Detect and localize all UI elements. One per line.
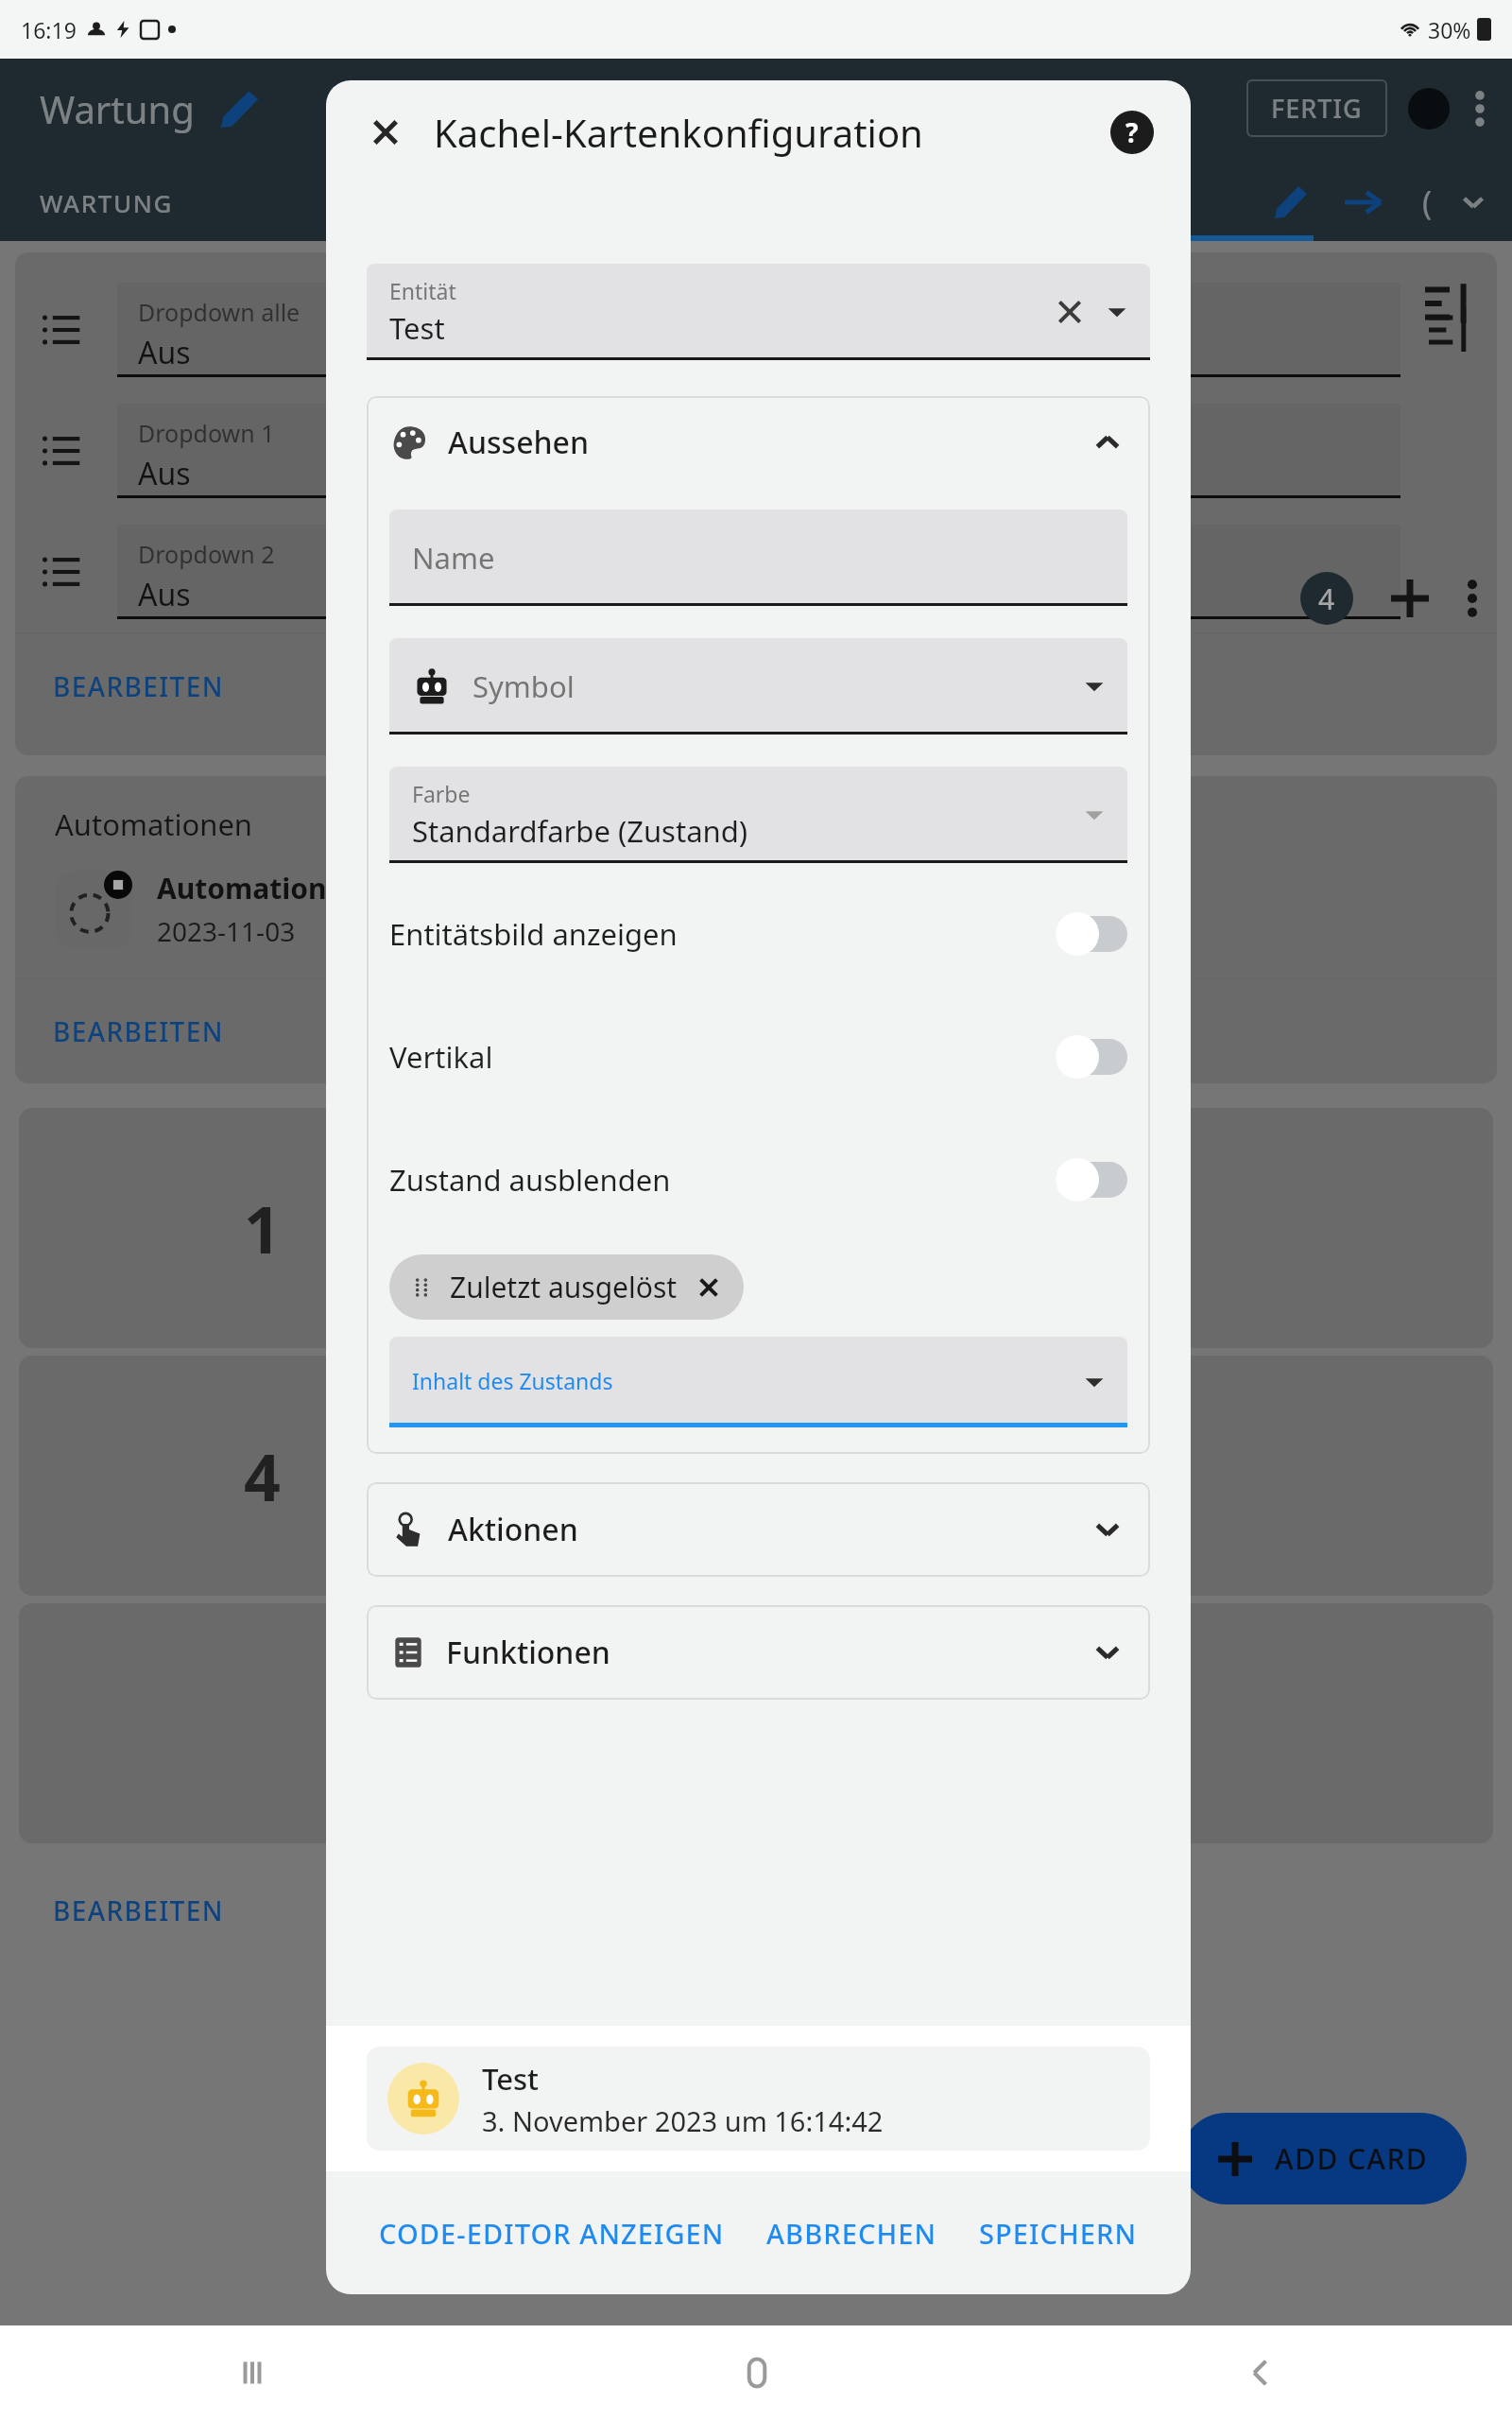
staticText: Test (482, 2059, 539, 2099)
other: Recent apps (236, 2357, 268, 2389)
staticText: Vertikal (389, 1037, 1056, 1077)
staticText: Aus (138, 332, 191, 373)
button[interactable]: Aussehen (367, 396, 1150, 489)
button[interactable]: CODE-EDITOR ANZEIGEN (366, 2202, 738, 2265)
staticText: 2023-11-03 (157, 913, 296, 949)
staticText: 4 (244, 1432, 281, 1520)
button[interactable]: Entitätsbild anzeigen (389, 873, 1127, 995)
button[interactable]: Funktionen (367, 1605, 1150, 1700)
staticText: ABBRECHEN (766, 2215, 937, 2252)
button[interactable]: Zuletzt ausgelöst (389, 1254, 744, 1320)
button[interactable]: Entität (367, 264, 1150, 360)
staticText: Zustand ausblenden (389, 1160, 1056, 1200)
staticText: Aktionen (448, 1509, 1090, 1550)
staticText: Zuletzt ausgelöst (450, 1268, 678, 1306)
staticText: 3. November 2023 um 16:14:42 (482, 2102, 884, 2139)
staticText: Aussehen (448, 422, 1090, 463)
staticText: ( (1422, 181, 1433, 224)
staticText: Automation (157, 869, 327, 907)
staticText: Dropdown 1 (138, 417, 275, 449)
staticText: CODE-EDITOR ANZEIGEN (379, 2215, 725, 2252)
button[interactable]: Symbol (389, 638, 1127, 735)
staticText: ? (1125, 114, 1139, 150)
button[interactable]: Schließen (360, 107, 411, 158)
staticText: SPEICHERN (979, 2215, 1138, 2252)
staticText: Standardfarbe (Zustand) (412, 811, 748, 851)
staticText: BEARBEITEN (53, 668, 224, 704)
staticText: ADD CARD (1275, 2139, 1429, 2178)
staticText: BEARBEITEN (53, 1013, 224, 1049)
button[interactable]: Zustand ausblenden (389, 1118, 1127, 1241)
other: Back (1245, 2357, 1277, 2389)
button[interactable]: Name (389, 510, 1127, 606)
button[interactable]: Vertikal (389, 995, 1127, 1118)
staticText: Test (389, 308, 445, 348)
staticText: 16:19 (21, 15, 77, 44)
staticText: BEARBEITEN (53, 1893, 224, 1928)
button[interactable]: Aktionen (367, 1482, 1150, 1577)
button[interactable]: ADD CARD (1180, 2113, 1467, 2204)
staticText: Dropdown alle (138, 296, 301, 328)
other: Home (740, 2356, 774, 2390)
staticText: FERTIG (1271, 91, 1363, 126)
staticText: Name (412, 538, 495, 578)
button[interactable]: ABBRECHEN (753, 2202, 951, 2265)
staticText: 1 (244, 1184, 281, 1272)
staticText: WARTUNG (40, 186, 173, 219)
staticText: Wartung (40, 83, 195, 134)
button[interactable]: Inhalt des Zustands (389, 1337, 1127, 1427)
button[interactable]: Farbe (389, 767, 1127, 863)
staticText: Dropdown 2 (138, 538, 275, 570)
staticText: Entitätsbild anzeigen (389, 914, 1056, 954)
staticText: Automationen (55, 804, 253, 844)
staticText: Farbe (412, 779, 471, 808)
button[interactable]: Test (367, 2047, 1150, 2151)
staticText: Entität (389, 276, 456, 305)
staticText: 4 (1318, 579, 1335, 618)
staticText: Symbol (472, 666, 575, 706)
button[interactable]: Hilfe (1106, 106, 1159, 159)
button[interactable]: SPEICHERN (966, 2202, 1151, 2265)
staticText: Aus (138, 574, 191, 615)
staticText: Funktionen (446, 1632, 1090, 1673)
staticText: Aus (138, 453, 191, 494)
staticText: Inhalt des Zustands (412, 1366, 613, 1395)
staticText: Kachel-Kartenkonfiguration (434, 107, 1106, 158)
staticText: 30% (1428, 15, 1471, 44)
button[interactable]: Löschen (1052, 294, 1088, 330)
